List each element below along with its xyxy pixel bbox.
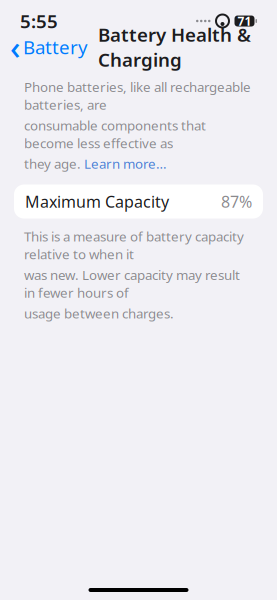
staticText: consumable components that become less e… [24,116,206,152]
staticText: usage between charges. [24,304,174,322]
button[interactable]: ‹ [10,22,88,72]
staticText: Learn more… [84,155,167,172]
staticText: 87% [221,191,252,212]
staticText: Phone batteries, like all rechargeable b… [24,78,251,113]
staticText: Maximum Capacity [25,191,169,212]
staticText: Battery [23,35,88,59]
staticText: ‹ [10,26,20,68]
staticText: Battery Health & Charging [98,22,251,72]
staticText: 71 [237,13,251,29]
staticText: was new. Lower capacity may result in fe… [24,266,240,301]
staticText: 5:55 [20,9,58,33]
staticText: they age. [24,155,84,172]
staticText: This is a measure of battery capacity re… [24,227,244,263]
button[interactable]: Learn more… [84,155,167,172]
button[interactable]: Maximum Capacity [14,184,263,218]
